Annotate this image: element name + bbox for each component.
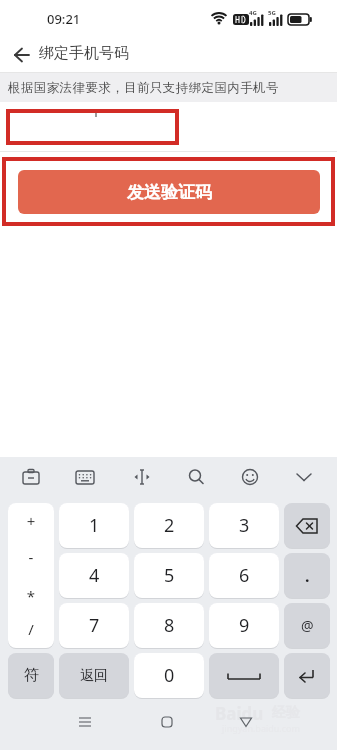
staticText: - <box>8 547 54 567</box>
button[interactable]: 3 <box>209 503 279 548</box>
button[interactable] <box>151 706 183 738</box>
staticText: 09:21 <box>47 10 81 28</box>
staticText: 符 <box>24 666 39 685</box>
staticText: jingyan.baidu.com <box>222 722 300 734</box>
staticText: . <box>305 565 310 587</box>
staticText: 1 <box>89 513 100 538</box>
button[interactable]: 2 <box>134 503 204 548</box>
staticText: 发送验证码 <box>127 182 212 203</box>
button[interactable] <box>286 459 322 495</box>
staticText: 5 <box>164 563 175 588</box>
staticText: 7 <box>89 613 100 638</box>
button[interactable]: 9 <box>209 603 279 648</box>
staticText: 8 <box>164 613 175 638</box>
staticText: @ <box>301 616 314 635</box>
button[interactable]: 返回 <box>59 653 129 698</box>
staticText: 5G <box>268 9 276 17</box>
button[interactable] <box>284 503 330 548</box>
staticText: 4G <box>249 9 257 17</box>
button[interactable] <box>67 459 103 495</box>
button[interactable]: 5 <box>134 553 204 598</box>
button[interactable] <box>69 706 101 738</box>
staticText: / <box>8 619 54 639</box>
button[interactable] <box>209 653 279 698</box>
button[interactable]: 1 <box>59 503 129 548</box>
staticText: + <box>8 511 54 531</box>
button[interactable] <box>124 459 160 495</box>
button[interactable] <box>13 459 49 495</box>
button[interactable]: 0 <box>134 653 204 698</box>
button[interactable]: 发送验证码 <box>18 170 320 214</box>
button[interactable]: 4 <box>59 553 129 598</box>
staticText: 绑定手机号码 <box>39 44 129 63</box>
button[interactable]: 符 <box>8 653 54 698</box>
button[interactable] <box>6 109 179 145</box>
button[interactable]: 8 <box>134 603 204 648</box>
button[interactable]: . <box>284 553 330 598</box>
staticText: 返回 <box>80 667 108 685</box>
staticText: Baidu <box>215 702 264 725</box>
button[interactable] <box>6 44 38 66</box>
staticText: 0 <box>164 663 175 688</box>
staticText: 6 <box>239 563 250 588</box>
button[interactable] <box>230 706 262 738</box>
staticText: 3 <box>239 513 250 538</box>
staticText: 2 <box>164 513 175 538</box>
button[interactable]: 6 <box>209 553 279 598</box>
button[interactable] <box>232 459 268 495</box>
staticText: 根据国家法律要求，目前只支持绑定国内手机号 <box>8 80 279 96</box>
button[interactable]: 7 <box>59 603 129 648</box>
staticText: 4 <box>89 563 100 588</box>
button[interactable]: @ <box>284 603 330 648</box>
button[interactable] <box>178 459 214 495</box>
button[interactable]: + <box>8 503 54 648</box>
staticText: * <box>8 586 54 606</box>
staticText: 9 <box>239 613 250 638</box>
button[interactable] <box>284 653 330 698</box>
